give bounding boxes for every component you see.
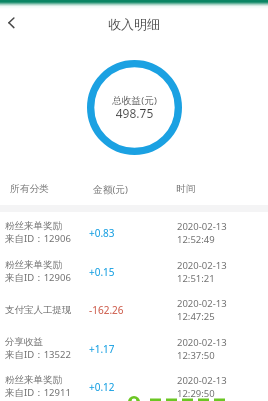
staticText: 12:51:21 bbox=[177, 272, 215, 285]
button[interactable]: 粉丝来单奖励 bbox=[0, 367, 268, 401]
staticText: +0.83 bbox=[89, 226, 115, 240]
staticText: +0.15 bbox=[89, 265, 115, 279]
staticText: +0.12 bbox=[89, 380, 115, 394]
button[interactable]: Back bbox=[0, 10, 24, 34]
staticText: 来自ID：12911 bbox=[5, 386, 71, 399]
staticText: 来自ID：12906 bbox=[5, 271, 71, 284]
staticText: 12:29:50 bbox=[177, 387, 215, 400]
staticText: 12:47:25 bbox=[177, 310, 215, 323]
staticText: 2020-02-13 bbox=[177, 297, 227, 310]
staticText: 2020-02-13 bbox=[177, 336, 227, 349]
button[interactable]: 分享收益 bbox=[0, 329, 268, 368]
staticText: 12:37:50 bbox=[177, 349, 215, 362]
staticText: +1.17 bbox=[89, 342, 115, 356]
staticText: 12:52:49 bbox=[177, 233, 215, 246]
staticText: -162.26 bbox=[89, 303, 124, 317]
staticText: 2020-02-13 bbox=[177, 220, 227, 233]
button[interactable]: 粉丝来单奖励 bbox=[0, 252, 268, 291]
staticText: 时间 bbox=[176, 183, 196, 195]
staticText: 分享收益 bbox=[5, 336, 43, 348]
staticText: 2020-02-13 bbox=[177, 374, 227, 387]
staticText: 金额(元) bbox=[93, 183, 128, 196]
button[interactable]: 粉丝来单奖励 bbox=[0, 213, 268, 252]
staticText: 2020-02-13 bbox=[177, 259, 227, 272]
staticText: 收入明细 bbox=[0, 16, 268, 32]
button[interactable]: 支付宝人工提现 bbox=[0, 290, 268, 329]
staticText: 来自ID：13522 bbox=[5, 348, 71, 361]
staticText: 粉丝来单奖励 bbox=[5, 220, 62, 232]
staticText: 总收益(元) bbox=[87, 94, 182, 107]
staticText: 498.75 bbox=[87, 105, 182, 121]
staticText: 来自ID：12906 bbox=[5, 232, 71, 245]
button[interactable]: 所有分类 bbox=[10, 183, 49, 195]
staticText: 支付宝人工提现 bbox=[5, 304, 72, 316]
staticText: 粉丝来单奖励 bbox=[5, 374, 62, 386]
staticText: 粉丝来单奖励 bbox=[5, 259, 62, 271]
